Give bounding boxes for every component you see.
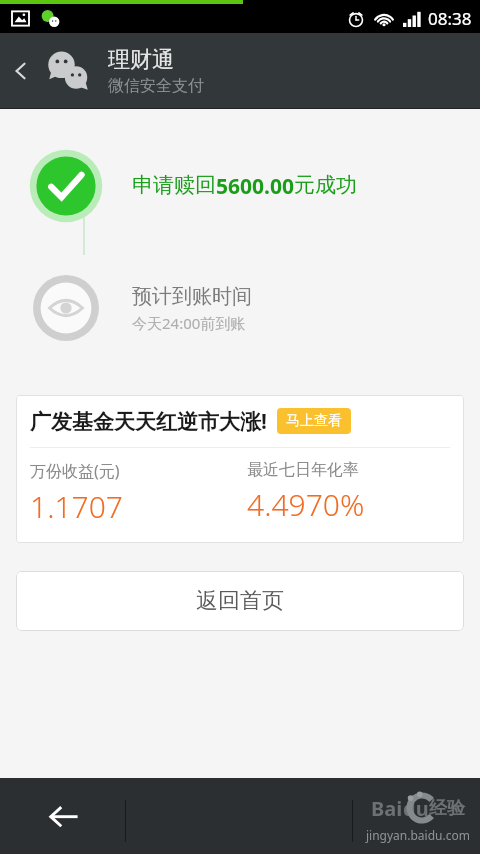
button[interactable]: 返回首页: [16, 571, 464, 631]
staticText: 4.4970%: [247, 484, 365, 525]
staticText: 元成功: [294, 172, 357, 198]
staticText: 万份收益(元): [30, 460, 120, 482]
staticText: 马上查看: [286, 412, 342, 430]
staticText: jingyan.baidu.com: [366, 827, 470, 843]
staticText: 经验: [429, 797, 465, 820]
staticText: 1.1707: [30, 486, 123, 527]
staticText: 08:38: [428, 7, 472, 30]
staticText: 申请赎回: [132, 172, 216, 198]
staticText: du: [403, 795, 429, 822]
staticText: 5600.00: [216, 172, 294, 201]
staticText: 理财通: [108, 46, 174, 74]
button[interactable]: 广发基金天天红逆市大涨!: [16, 395, 464, 543]
staticText: 返回首页: [196, 587, 284, 615]
button[interactable]: Back: [0, 33, 42, 108]
button[interactable]: 马上查看: [277, 408, 351, 434]
staticText: 最近七日年化率: [247, 460, 359, 480]
staticText: Bai: [371, 795, 403, 822]
staticText: 预计到账时间: [132, 284, 252, 309]
staticText: 今天24:00前到账: [132, 313, 246, 333]
button[interactable]: Back: [28, 778, 100, 854]
staticText: 微信安全支付: [108, 76, 204, 96]
staticText: 广发基金天天红逆市大涨!: [30, 407, 267, 436]
